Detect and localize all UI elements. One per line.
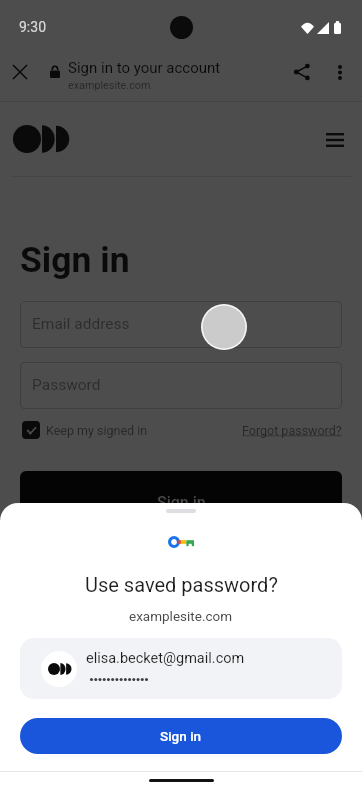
staticText: Sign in xyxy=(160,728,202,744)
staticText: Password xyxy=(32,376,101,394)
staticText: examplesite.com xyxy=(68,79,151,92)
button[interactable]: Sign in xyxy=(20,471,342,533)
staticText: Sign in xyxy=(157,493,206,512)
button[interactable]: elisa.becket@gmail.com xyxy=(20,638,342,699)
staticText: Sign in xyxy=(20,239,130,281)
button[interactable]: Email address xyxy=(20,301,342,348)
staticText: elisa.becket@gmail.com xyxy=(86,650,245,667)
staticText: 9:30 xyxy=(19,19,46,35)
button[interactable]: More options xyxy=(321,53,359,91)
staticText: Keep my signed in xyxy=(46,423,148,438)
button[interactable]: Sign in xyxy=(20,718,342,754)
button[interactable]: Close xyxy=(0,45,40,98)
staticText: Use saved password? xyxy=(85,573,278,596)
button[interactable]: Menu xyxy=(318,123,352,157)
staticText: Email address xyxy=(32,315,130,333)
button[interactable]: Share xyxy=(282,52,322,92)
button[interactable]: Password xyxy=(20,362,342,409)
staticText: examplesite.com xyxy=(129,608,233,624)
staticText: Forgot password? xyxy=(242,423,342,438)
staticText: Sign in to your account xyxy=(68,59,221,77)
